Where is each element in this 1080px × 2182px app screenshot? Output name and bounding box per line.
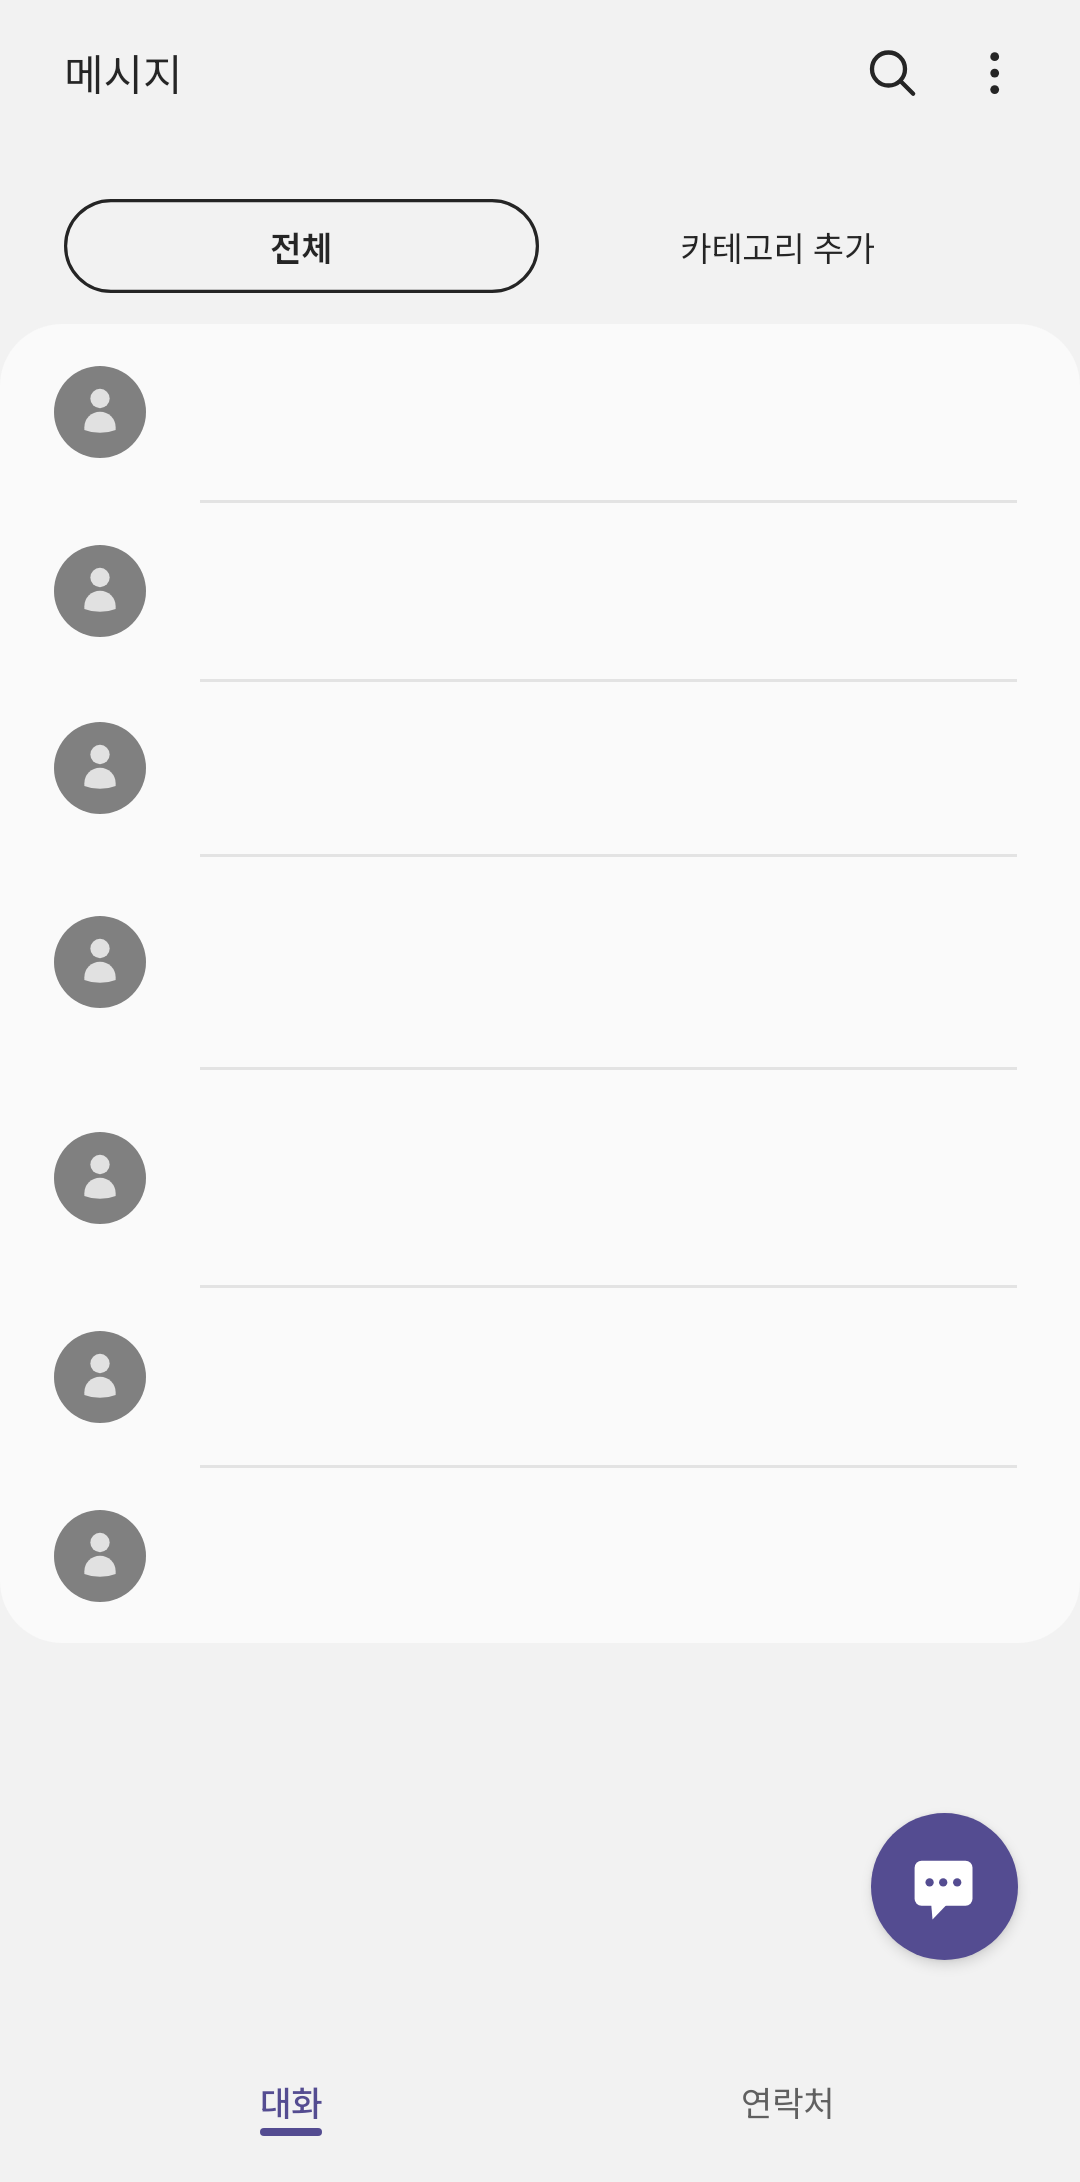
button[interactable]: 대화 — [141, 2022, 441, 2182]
staticText: 전체 — [270, 222, 333, 271]
button[interactable] — [0, 1288, 1080, 1465]
button[interactable]: Search — [840, 21, 936, 117]
button[interactable]: 연락처 — [638, 2022, 938, 2182]
staticText: 카테고리 추가 — [680, 222, 876, 271]
staticText: 메시지 — [64, 41, 183, 103]
button[interactable] — [0, 324, 1080, 500]
button[interactable] — [0, 503, 1080, 679]
button[interactable] — [0, 1070, 1080, 1285]
button[interactable]: 카테고리 추가 — [628, 199, 928, 293]
button[interactable]: Start new conversation — [871, 1813, 1018, 1960]
button[interactable]: 전체 — [64, 199, 539, 293]
button[interactable] — [0, 857, 1080, 1067]
button[interactable] — [0, 1468, 1080, 1643]
staticText: 대화 — [260, 2077, 323, 2126]
button[interactable]: More options — [947, 25, 1043, 121]
staticText: 연락처 — [741, 2077, 835, 2126]
button[interactable] — [0, 682, 1080, 854]
